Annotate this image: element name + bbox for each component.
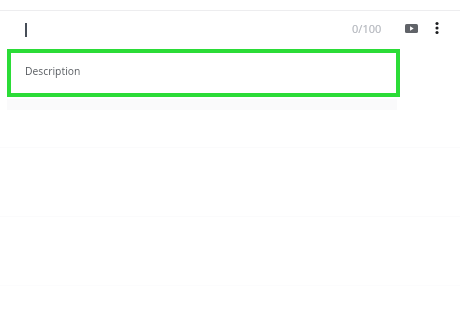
button[interactable]: More options [424, 15, 450, 41]
staticText: Description [25, 64, 81, 78]
button[interactable]: Title [10, 14, 340, 40]
button[interactable]: Add video [398, 15, 424, 41]
button[interactable]: Description [7, 49, 400, 97]
staticText: 0/100 [352, 21, 382, 36]
